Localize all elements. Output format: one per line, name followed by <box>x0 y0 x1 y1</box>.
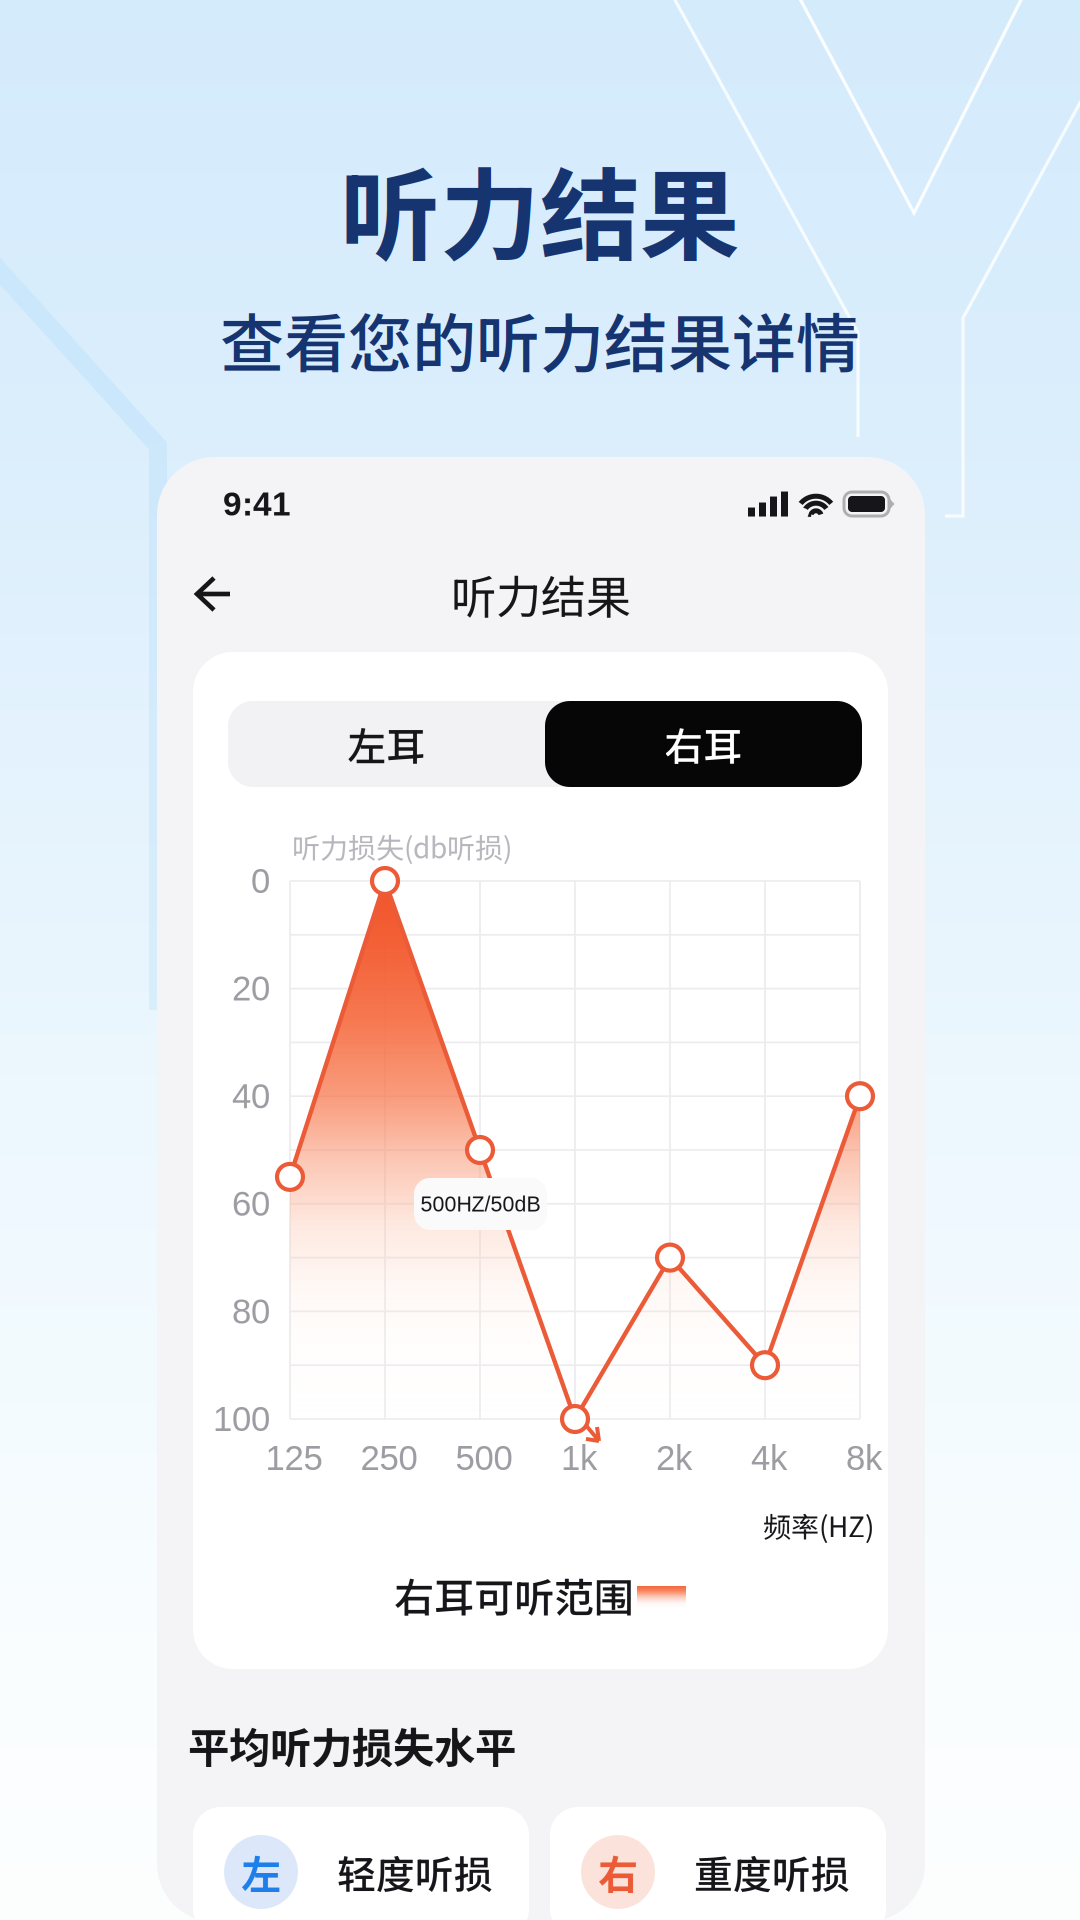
staticText: 听力结果 <box>451 561 631 627</box>
staticText: 40 <box>232 1077 270 1115</box>
button[interactable]: 右耳 <box>545 701 862 787</box>
staticText: 0 <box>251 862 270 900</box>
staticText: 500 <box>455 1439 512 1477</box>
staticText: 重度听损 <box>694 1844 850 1900</box>
staticText: 听力结果 <box>340 136 740 281</box>
staticText: 平均听力损失水平 <box>188 1715 516 1775</box>
staticText: 查看您的听力结果详情 <box>220 293 860 386</box>
staticText: 20 <box>232 969 270 1008</box>
staticText: 100 <box>213 1400 270 1438</box>
staticText: 右耳可听范围 <box>394 1566 634 1624</box>
staticText: 2k <box>656 1439 692 1477</box>
staticText: 500HZ/50dB <box>420 1192 540 1216</box>
staticText: 左 <box>241 1843 281 1901</box>
staticText: 听力损失(db听损) <box>292 826 512 866</box>
staticText: 250 <box>360 1439 417 1477</box>
button[interactable]: 返回 <box>178 553 248 635</box>
staticText: 1k <box>561 1439 597 1477</box>
staticText: 9:41 <box>223 485 291 523</box>
staticText: 125 <box>265 1439 322 1477</box>
staticText: 右 <box>598 1843 638 1901</box>
staticText: 右耳 <box>664 716 742 772</box>
button[interactable]: 左耳 <box>228 701 545 787</box>
staticText: 8k <box>846 1439 882 1477</box>
button[interactable]: 右 <box>550 1807 886 1920</box>
staticText: 轻度听损 <box>337 1844 493 1900</box>
staticText: 80 <box>232 1292 270 1331</box>
button[interactable]: 左 <box>193 1807 529 1920</box>
staticText: 4k <box>751 1439 787 1477</box>
staticText: 左耳 <box>347 716 425 772</box>
staticText: 频率(HZ) <box>763 1505 874 1545</box>
staticText: 60 <box>232 1184 270 1223</box>
